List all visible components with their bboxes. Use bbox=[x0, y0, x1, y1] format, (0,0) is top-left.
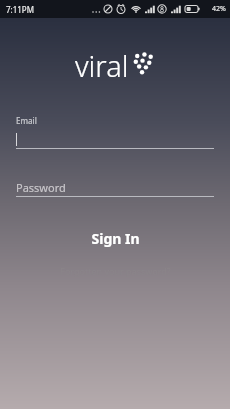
staticText: Password bbox=[16, 180, 66, 195]
staticText: Sign In bbox=[91, 229, 140, 248]
staticText: 7:11PM bbox=[6, 4, 34, 15]
staticText: viral bbox=[75, 46, 129, 85]
button[interactable] bbox=[16, 131, 214, 148]
button[interactable]: Password bbox=[16, 178, 214, 196]
button[interactable]: Sign In bbox=[0, 225, 230, 251]
staticText: 42% bbox=[212, 4, 226, 14]
other: Viral logo bbox=[131, 52, 155, 76]
staticText: Email bbox=[16, 115, 37, 126]
